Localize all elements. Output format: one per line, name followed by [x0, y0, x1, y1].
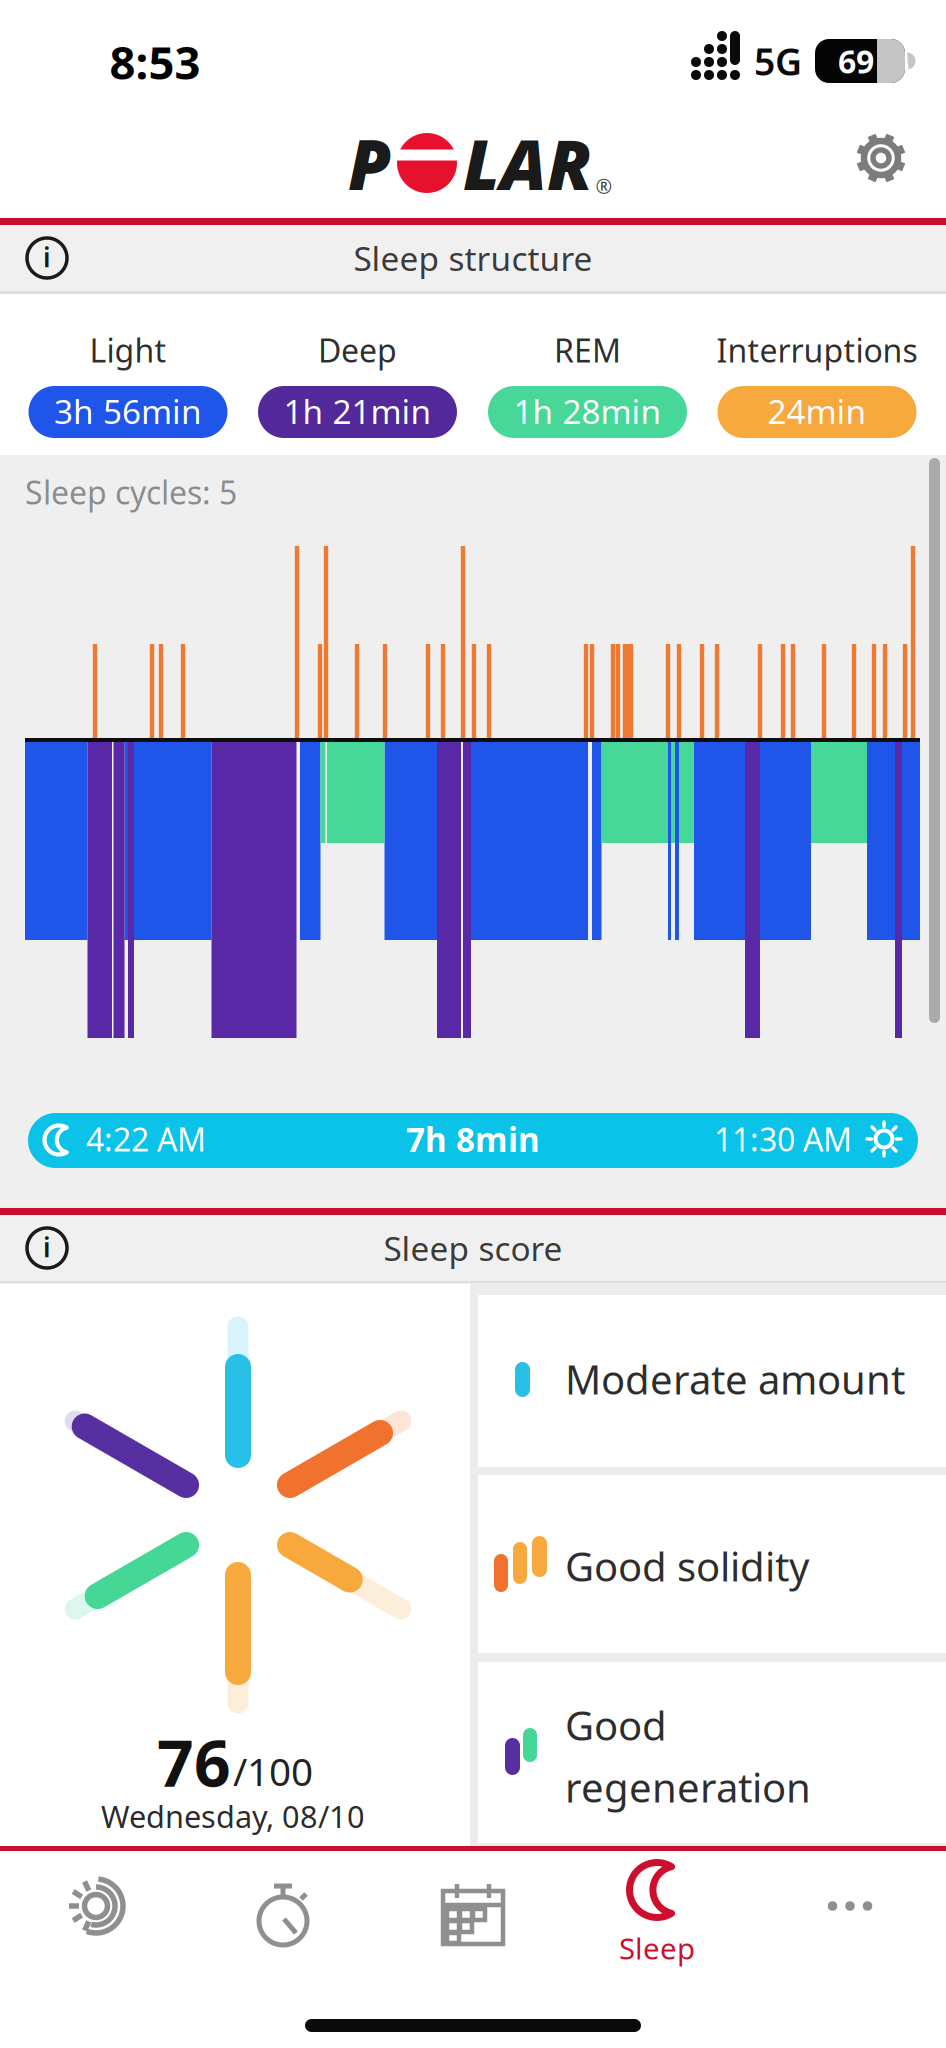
button[interactable] — [478, 1662, 946, 1843]
staticText: P — [348, 117, 391, 209]
button[interactable]: Diary — [433, 1866, 513, 1946]
staticText: /100 — [233, 1745, 313, 1797]
staticText: Interruptions — [716, 329, 917, 371]
staticText: LAR — [463, 117, 592, 209]
button[interactable]: Settings — [851, 128, 911, 188]
staticText: 4:22 AM — [86, 1118, 206, 1160]
button[interactable] — [478, 1475, 946, 1653]
staticText: Wednesday, 08/10 — [101, 1796, 365, 1836]
staticText: Good solidity — [565, 1539, 809, 1592]
staticText: i — [43, 1229, 51, 1265]
button[interactable]: Sleep score info — [24, 1225, 70, 1271]
staticText: i — [43, 239, 51, 275]
staticText: regeneration — [565, 1760, 811, 1813]
staticText: REM — [554, 329, 621, 371]
staticText: Good — [565, 1698, 667, 1751]
staticText: 5G — [754, 36, 802, 86]
button[interactable]: Sleep structure info — [24, 235, 70, 281]
staticText: 24min — [767, 389, 866, 433]
staticText: 7h 8min — [406, 1117, 540, 1161]
staticText: 1h 28min — [513, 389, 661, 433]
button[interactable]: More — [810, 1876, 890, 1936]
staticText: Sleep score — [383, 1226, 562, 1270]
staticText: Sleep structure — [353, 236, 592, 280]
staticText: Sleep cycles: 5 — [25, 471, 237, 513]
button[interactable]: Sleep — [592, 1850, 722, 1960]
staticText: 3h 56min — [54, 389, 202, 433]
staticText: Moderate amount — [565, 1352, 905, 1405]
button[interactable]: Activity — [52, 1866, 132, 1946]
staticText: Sleep — [619, 1928, 695, 1967]
button[interactable]: Training — [243, 1866, 323, 1946]
staticText: Light — [89, 329, 166, 371]
staticText: 76 — [157, 1719, 231, 1804]
staticText: 11:30 AM — [714, 1118, 852, 1160]
staticText: 69 — [838, 40, 874, 82]
staticText: Deep — [318, 329, 397, 371]
button[interactable] — [478, 1295, 946, 1467]
staticText: 8:53 — [109, 32, 200, 92]
staticText: 1h 21min — [283, 389, 431, 433]
staticText: ® — [595, 173, 612, 199]
